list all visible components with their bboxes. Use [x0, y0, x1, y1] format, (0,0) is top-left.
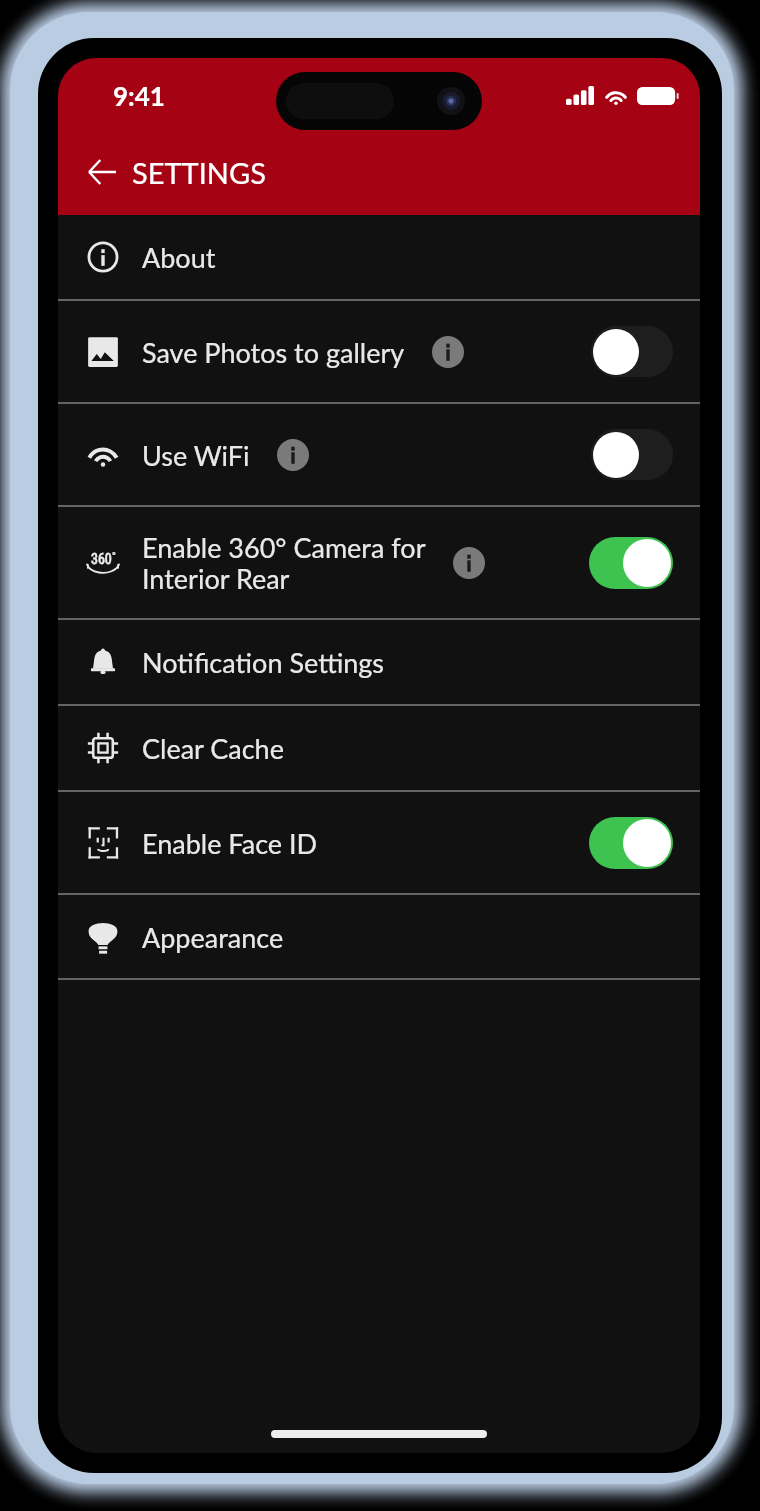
- button[interactable]: About: [58, 215, 700, 299]
- staticText: Use WiFi: [142, 439, 250, 471]
- button[interactable]: Toggle off: [591, 326, 673, 377]
- button[interactable]: Enable Face ID: [58, 792, 700, 893]
- button[interactable]: Use WiFi: [58, 404, 700, 505]
- staticText: Save Photos to gallery: [142, 336, 405, 368]
- staticText: Enable Face ID: [142, 827, 318, 859]
- button[interactable]: Notification Settings: [58, 620, 700, 704]
- staticText: °: [112, 551, 116, 563]
- button[interactable]: Back: [84, 154, 120, 190]
- button[interactable]: Toggle on: [589, 537, 673, 589]
- staticText: 9:41: [113, 80, 165, 111]
- button[interactable]: Toggle on: [589, 817, 673, 869]
- staticText: Notification Settings: [142, 646, 385, 678]
- staticText: 360: [91, 551, 112, 567]
- staticText: Appearance: [142, 921, 284, 953]
- staticText: Enable 360° Camera for Interior Rear: [142, 531, 426, 595]
- staticText: About: [142, 241, 216, 273]
- button[interactable]: Clear Cache: [58, 706, 700, 790]
- staticText: SETTINGS: [132, 155, 266, 190]
- button[interactable]: Toggle off: [591, 429, 673, 480]
- staticText: Clear Cache: [142, 732, 284, 764]
- button[interactable]: Save Photos to gallery: [58, 301, 700, 402]
- button[interactable]: 360: [58, 507, 700, 618]
- button[interactable]: Appearance: [58, 895, 700, 978]
